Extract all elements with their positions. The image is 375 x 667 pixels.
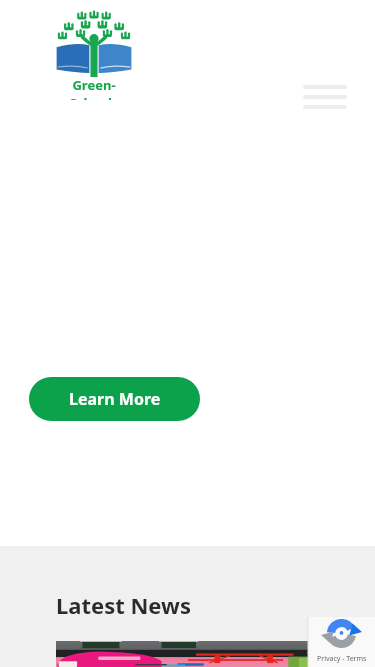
staticText: Green-Schools <box>52 76 136 100</box>
staticText: Learn More <box>69 388 161 410</box>
button[interactable]: Latest news article image <box>56 641 320 667</box>
button[interactable]: Learn More <box>29 377 200 421</box>
button[interactable]: Green-Schools An Taisce home <box>52 10 136 100</box>
staticText: Latest News <box>56 590 191 620</box>
button[interactable]: Open menu <box>296 74 354 120</box>
button[interactable]: reCAPTCHA privacy and terms <box>308 617 375 667</box>
staticText: Privacy - Terms <box>317 654 367 664</box>
